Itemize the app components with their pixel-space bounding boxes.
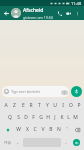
staticText: R	[29, 102, 33, 109]
button[interactable]: '	[63, 124, 71, 135]
staticText: S	[17, 114, 20, 121]
button[interactable]: W	[14, 124, 23, 135]
staticText: N	[57, 126, 61, 133]
staticText: G	[39, 114, 43, 121]
button[interactable]: More options	[73, 6, 82, 20]
button[interactable]: Q	[6, 112, 14, 123]
staticText: B	[49, 126, 53, 133]
staticText: X	[26, 126, 29, 133]
button[interactable]: ,	[14, 136, 22, 149]
staticText: .	[65, 139, 67, 146]
button[interactable]: U	[51, 99, 59, 111]
staticText: ?1☺	[4, 140, 12, 145]
button[interactable]: M	[72, 112, 79, 123]
button[interactable]: A	[1, 99, 10, 111]
staticText: C	[33, 126, 37, 133]
staticText: I	[62, 102, 64, 109]
staticText: P	[77, 102, 81, 109]
button[interactable]: Typ een bericht	[2, 86, 69, 97]
staticText: H	[46, 114, 50, 121]
staticText: J	[54, 114, 56, 121]
button[interactable]: N	[55, 124, 63, 135]
staticText: K	[60, 114, 64, 121]
button[interactable]: Voice call	[55, 6, 64, 20]
staticText: L	[67, 114, 70, 121]
staticText: T	[38, 102, 41, 109]
staticText: '	[66, 126, 68, 133]
button[interactable]: D	[22, 112, 30, 123]
button[interactable]: Profile photo	[11, 8, 21, 18]
staticText: O	[69, 102, 73, 109]
staticText: Z	[13, 102, 16, 109]
button[interactable]: Y	[43, 99, 51, 111]
button[interactable]: Video call	[64, 6, 73, 20]
staticText: V	[41, 126, 45, 133]
button[interactable]: Enter	[71, 137, 82, 148]
button[interactable]: L	[65, 112, 72, 123]
button[interactable]: Back	[2, 9, 11, 18]
button[interactable]: S	[14, 112, 22, 123]
staticText: 11:48	[71, 1, 82, 6]
button[interactable]: E	[19, 99, 27, 111]
button[interactable]: H	[44, 112, 51, 123]
button[interactable]: G	[37, 112, 44, 123]
button[interactable]: Backspace	[71, 124, 83, 135]
button[interactable]: ?1☺	[1, 136, 14, 149]
staticText: E	[22, 102, 25, 109]
button[interactable]: C	[31, 124, 39, 135]
staticText: A	[4, 102, 8, 109]
staticText: W	[16, 126, 21, 133]
staticText: Afscheid	[23, 7, 44, 14]
button[interactable]: I	[59, 99, 67, 111]
staticText: Y	[46, 102, 49, 109]
button[interactable]: X	[23, 124, 31, 135]
staticText: U	[53, 102, 57, 109]
button[interactable]: O	[67, 99, 75, 111]
staticText: ,	[17, 139, 19, 146]
staticText: gisteren om 19:54	[23, 15, 53, 20]
button[interactable]: P	[75, 99, 83, 111]
button[interactable]: Shift	[1, 124, 14, 135]
button[interactable]: B	[47, 124, 55, 135]
staticText: Typ een bericht	[11, 89, 61, 94]
button[interactable]: J	[51, 112, 58, 123]
button[interactable]: F	[30, 112, 37, 123]
staticText: Q	[8, 114, 12, 121]
button[interactable]: V	[39, 124, 47, 135]
button[interactable]: Afscheid	[23, 7, 55, 20]
staticText: M	[73, 114, 78, 121]
button[interactable]: T	[35, 99, 43, 111]
staticText: F	[32, 114, 35, 121]
button[interactable]: Camera	[61, 89, 67, 95]
button[interactable]: .	[62, 136, 70, 149]
staticText: D	[24, 114, 28, 121]
button[interactable]: Z	[10, 99, 19, 111]
button[interactable]: K	[58, 112, 65, 123]
button[interactable]: R	[27, 99, 35, 111]
button[interactable]: Record voice message	[71, 86, 82, 97]
